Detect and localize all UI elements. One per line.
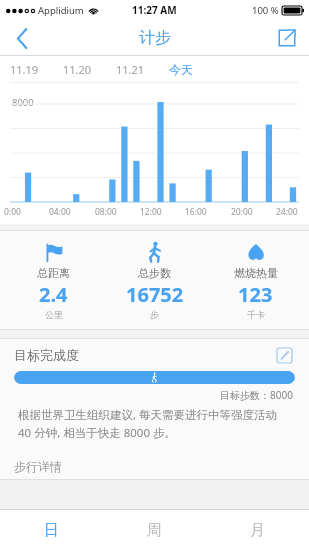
staticText: 11.19 [10,62,39,77]
staticText: 20:00 [231,206,253,218]
staticText: 0:00 [4,206,21,218]
button[interactable]: 总步数 [107,241,202,320]
button[interactable]: 步行详情 [0,453,309,479]
staticText: 计步 [139,28,171,48]
staticText: 11.21 [116,62,145,77]
staticText: 123 [238,281,273,308]
button[interactable]: 今天 [169,56,219,82]
staticText: 周 [147,521,162,540]
staticText: 日 [44,521,59,540]
staticText: 11:27 AM [132,3,177,17]
staticText: 步 [150,309,159,320]
staticText: 总距离 [37,266,70,280]
staticText: 8000 [12,96,34,109]
button[interactable]: Share [265,20,309,56]
staticText: 步行详情 [14,459,62,474]
staticText: 目标完成度 [14,347,79,363]
staticText: 12:00 [140,206,162,218]
button[interactable]: 日 [0,510,103,550]
button[interactable]: 11.19 [10,56,63,82]
staticText: 月 [250,521,265,540]
staticText: 2.4 [39,281,68,308]
staticText: Applidium [38,4,84,17]
staticText: 今天 [169,62,193,77]
staticText: 公里 [45,309,63,320]
button[interactable]: 月 [206,510,309,550]
staticText: 千卡 [247,309,265,320]
button[interactable]: 燃烧热量 [208,241,303,320]
staticText: 目标步数：8000 [220,388,293,402]
staticText: 100 % [252,4,279,17]
button[interactable] [14,371,295,384]
staticText: 08:00 [95,206,117,218]
button[interactable]: 11.20 [63,56,116,82]
button[interactable]: 11.21 [116,56,169,82]
button[interactable]: 总距离 [6,241,101,320]
staticText: 04:00 [49,206,71,218]
button[interactable]: Edit goal [273,344,295,366]
button[interactable]: 周 [103,510,206,550]
staticText: 24:00 [276,206,298,218]
staticText: 11.20 [63,62,92,77]
button[interactable]: Back [0,20,44,56]
staticText: 根据世界卫生组织建议, 每天需要进行中等强度活动 40 分钟, 相当于快走 80… [18,407,291,441]
staticText: 燃烧热量 [234,266,278,280]
staticText: 总步数 [138,266,171,280]
staticText: 16:00 [185,206,207,218]
staticText: 16752 [126,281,184,308]
